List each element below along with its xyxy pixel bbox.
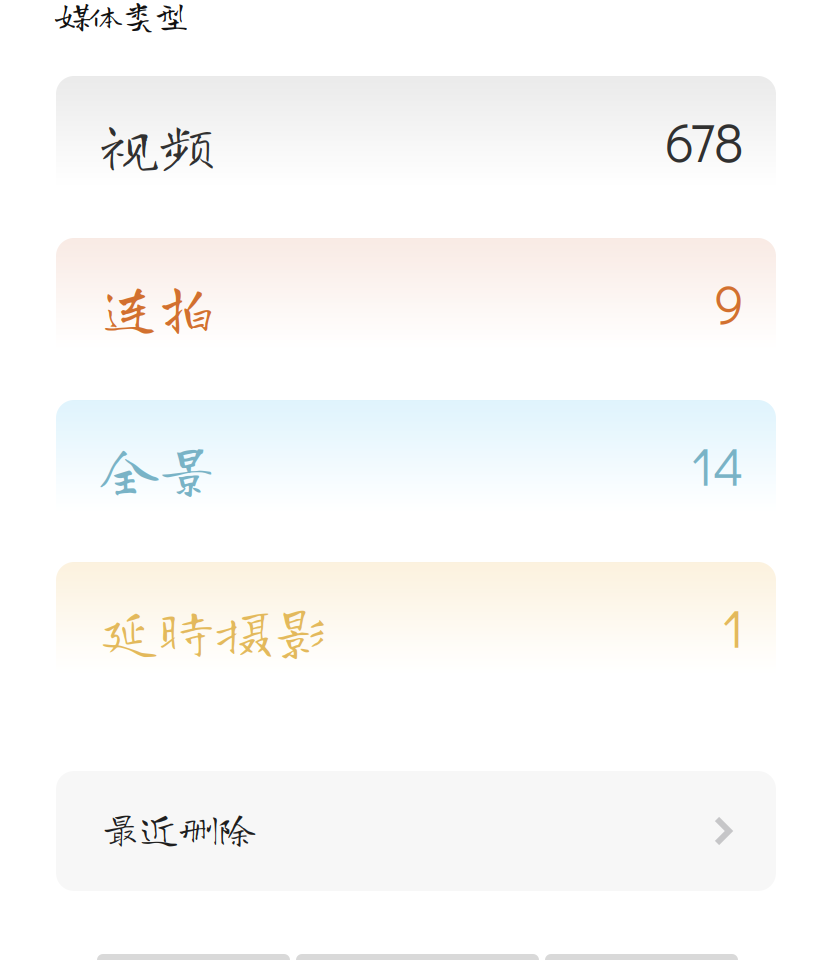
- staticText: 全景: [101, 440, 215, 497]
- button[interactable]: 连拍: [56, 238, 776, 369]
- staticText: 视频: [101, 116, 215, 173]
- staticText: 9: [714, 268, 744, 338]
- button[interactable]: 延时摄影: [56, 562, 776, 693]
- staticText: 14: [691, 430, 744, 500]
- staticText: 678: [665, 106, 744, 176]
- button[interactable]: 全景: [56, 400, 776, 531]
- staticText: 媒体类型: [56, 0, 188, 32]
- button[interactable]: 最近删除: [56, 771, 776, 891]
- staticText: 延时摄影: [101, 602, 329, 659]
- staticText: 最近删除: [101, 809, 257, 847]
- button[interactable]: 视频: [56, 76, 776, 207]
- staticText: 连拍: [101, 278, 215, 335]
- staticText: 1: [722, 592, 744, 662]
